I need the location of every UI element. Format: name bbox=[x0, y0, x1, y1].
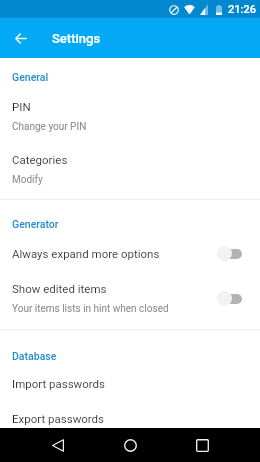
staticText: Import passwords bbox=[12, 377, 106, 390]
button[interactable]: Home bbox=[116, 431, 144, 459]
staticText: Categories bbox=[12, 153, 68, 166]
button[interactable]: Recent apps bbox=[188, 431, 216, 459]
button[interactable]: Import passwords bbox=[0, 362, 260, 390]
staticText: Export passwords bbox=[12, 412, 105, 425]
staticText: Modify bbox=[12, 174, 43, 186]
staticText: Change your PIN bbox=[12, 121, 87, 133]
staticText: PIN bbox=[12, 100, 31, 113]
button[interactable]: Always expand more options bbox=[0, 230, 260, 261]
button[interactable]: Back bbox=[44, 431, 72, 459]
button[interactable]: PIN bbox=[0, 83, 260, 133]
staticText: 21:26 bbox=[228, 3, 256, 16]
button[interactable]: Categories bbox=[0, 133, 260, 186]
staticText: General bbox=[12, 71, 49, 83]
button[interactable]: Show edited items bbox=[0, 261, 260, 315]
staticText: Always expand more options bbox=[12, 247, 160, 260]
button[interactable]: Export passwords bbox=[0, 390, 260, 425]
staticText: Your items lists in hint when closed bbox=[12, 303, 169, 315]
staticText: Settings bbox=[52, 31, 101, 46]
staticText: Generator bbox=[12, 218, 59, 230]
button[interactable]: Navigate up bbox=[2, 18, 40, 58]
staticText: Show edited items bbox=[12, 282, 107, 295]
staticText: Database bbox=[12, 350, 57, 362]
